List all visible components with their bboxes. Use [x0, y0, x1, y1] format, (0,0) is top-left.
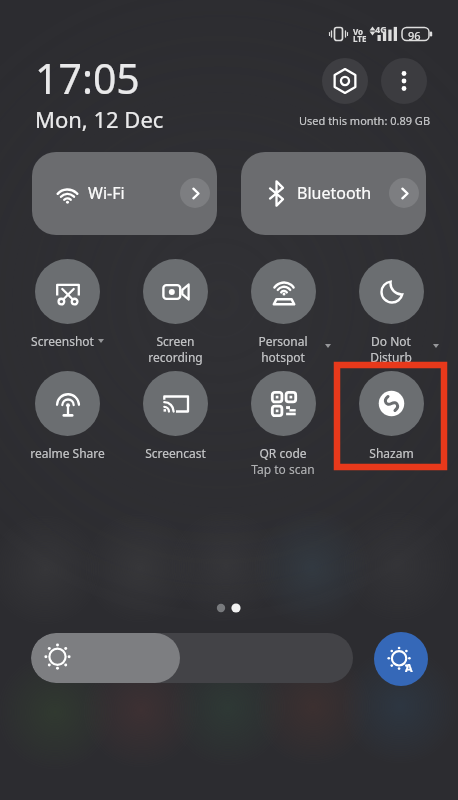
staticText: Do Not — [371, 333, 411, 349]
button[interactable]: Bluetooth — [241, 152, 426, 235]
staticText: 96 — [408, 28, 421, 43]
staticText: LTE — [353, 33, 367, 44]
button[interactable]: Auto brightness — [374, 632, 428, 686]
staticText: Screen — [156, 333, 195, 349]
staticText: Screencast — [145, 445, 206, 461]
staticText: recording — [148, 349, 203, 365]
staticText: Bluetooth — [297, 182, 372, 204]
staticText: Used this month: 0.89 GB — [299, 113, 431, 128]
button[interactable]: Do Not — [337, 259, 445, 365]
staticText: Vo — [353, 26, 364, 37]
staticText: Personal — [258, 333, 308, 349]
staticText: hotspot — [261, 349, 305, 365]
button[interactable]: realme Share — [13, 371, 121, 461]
button[interactable]: Screen — [121, 259, 229, 365]
button[interactable]: Screencast — [121, 371, 229, 461]
staticText: Mon, 12 Dec — [35, 104, 164, 134]
button[interactable]: More options — [381, 58, 427, 104]
staticText: realme Share — [30, 445, 105, 461]
staticText: Disturb — [370, 349, 412, 365]
staticText: QR code — [259, 445, 307, 461]
button[interactable]: Screenshot — [13, 259, 121, 349]
button[interactable]: Brightness — [31, 633, 353, 683]
button[interactable]: Settings — [322, 58, 368, 104]
staticText: Wi-Fi — [88, 182, 125, 204]
staticText: Tap to scan — [251, 461, 315, 477]
staticText: 17:05 — [35, 50, 140, 106]
button[interactable]: Personal — [229, 259, 337, 365]
staticText: Shazam — [369, 445, 414, 461]
button[interactable]: Wi-Fi — [32, 152, 217, 235]
staticText: Screenshot — [31, 333, 94, 349]
staticText: A — [405, 660, 413, 675]
staticText: 4G — [375, 23, 387, 35]
button[interactable]: QR code — [229, 371, 337, 477]
button[interactable]: Shazam — [337, 371, 445, 461]
